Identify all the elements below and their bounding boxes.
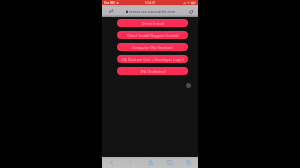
button[interactable]: Back bbox=[106, 157, 117, 168]
button[interactable]: Page settings bbox=[109, 8, 114, 14]
button[interactable]: Computer (No Revokes) bbox=[117, 43, 188, 51]
button[interactable]: Forward bbox=[125, 157, 136, 168]
staticText: Direct Install bbox=[142, 21, 164, 26]
staticText: Direct Install (Support Scarlet) bbox=[127, 33, 179, 38]
button[interactable]: IPA (Trollstore) bbox=[117, 67, 188, 75]
staticText: Computer (No Revokes) bbox=[132, 45, 173, 50]
button[interactable]: IPA (Custom Cert + Developer Login) bbox=[117, 55, 188, 63]
button[interactable]: Share bbox=[145, 157, 156, 168]
staticText: resources.usescarlet.com bbox=[129, 9, 176, 14]
staticText: IPA (Trollstore) bbox=[140, 69, 166, 74]
staticText: 5:14:51 bbox=[145, 1, 156, 5]
button[interactable]: AssistiveTouch bbox=[186, 83, 191, 88]
staticText: IPA (Custom Cert + Developer Login) bbox=[121, 57, 184, 62]
button[interactable]: Bookmarks bbox=[164, 157, 175, 168]
staticText: A bbox=[111, 8, 114, 14]
staticText: A bbox=[109, 10, 111, 14]
button[interactable]: Direct Install (Support Scarlet) bbox=[117, 31, 188, 39]
button[interactable]: Direct Install bbox=[117, 19, 188, 27]
button[interactable]: Reload bbox=[188, 9, 193, 14]
button[interactable]: Tabs bbox=[183, 157, 194, 168]
staticText: Free SIM bbox=[104, 1, 115, 5]
